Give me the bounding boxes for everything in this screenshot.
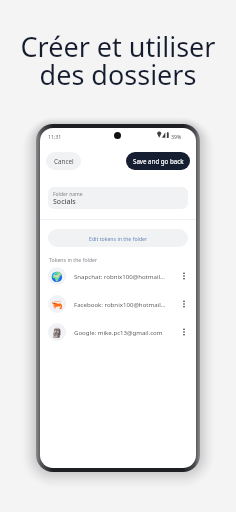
staticText: 🦐 xyxy=(51,299,63,310)
staticText: Google: mike.pc13@gmail.com xyxy=(74,328,177,336)
button[interactable]: Save and go back xyxy=(126,152,190,170)
staticText: Edit tokens in the folder xyxy=(89,235,148,242)
staticText: Save and go back xyxy=(133,157,184,165)
staticText: Créer et utiliser des dossiers xyxy=(0,28,236,93)
button[interactable]: More options xyxy=(177,297,191,311)
staticText: Cancel xyxy=(54,157,74,166)
staticText: 39% xyxy=(171,133,182,140)
button[interactable]: 🗿 xyxy=(40,318,196,346)
button[interactable]: 🌍 xyxy=(40,262,196,290)
staticText: 🌍 xyxy=(51,271,63,282)
button[interactable]: More options xyxy=(177,325,191,339)
staticText: Tokens in the folder xyxy=(49,256,98,263)
staticText: Snapchat: robnix100@hotmail… xyxy=(74,272,177,280)
button[interactable]: Folder name xyxy=(48,187,188,209)
button[interactable]: Edit tokens in the folder xyxy=(48,229,188,247)
staticText: 🗿 xyxy=(51,327,63,338)
button[interactable]: 🦐 xyxy=(40,290,196,318)
staticText: Facebook: robnix100@hotmail… xyxy=(74,300,177,308)
staticText: Socials xyxy=(53,197,76,207)
staticText: Folder name xyxy=(53,191,83,198)
button[interactable]: More options xyxy=(177,269,191,283)
staticText: 11:31 xyxy=(48,133,62,140)
button[interactable]: Cancel xyxy=(46,152,81,170)
